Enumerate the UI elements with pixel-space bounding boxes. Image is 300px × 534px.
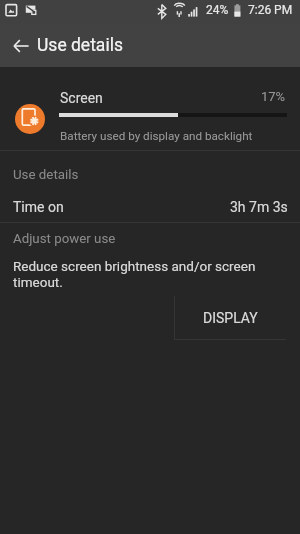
staticText: 7:26 PM [248, 3, 293, 17]
staticText: Time on [13, 199, 64, 215]
staticText: Use details [13, 167, 79, 183]
staticText: Use details [37, 35, 123, 56]
button[interactable]: Back [0, 24, 41, 67]
button[interactable]: Time on [0, 190, 300, 224]
button[interactable]: Screen battery usage [15, 104, 45, 134]
staticText: Battery used by display and backlight [60, 129, 253, 143]
button[interactable]: DISPLAY [175, 296, 286, 339]
staticText: Screen [60, 90, 103, 106]
staticText: Reduce screen brightness and/or screen t… [13, 258, 256, 291]
staticText: 17% [261, 89, 286, 104]
staticText: Adjust power use [13, 231, 116, 247]
staticText: DISPLAY [203, 310, 258, 326]
staticText: 24% [206, 3, 229, 17]
staticText: 3h 7m 3s [230, 199, 288, 215]
